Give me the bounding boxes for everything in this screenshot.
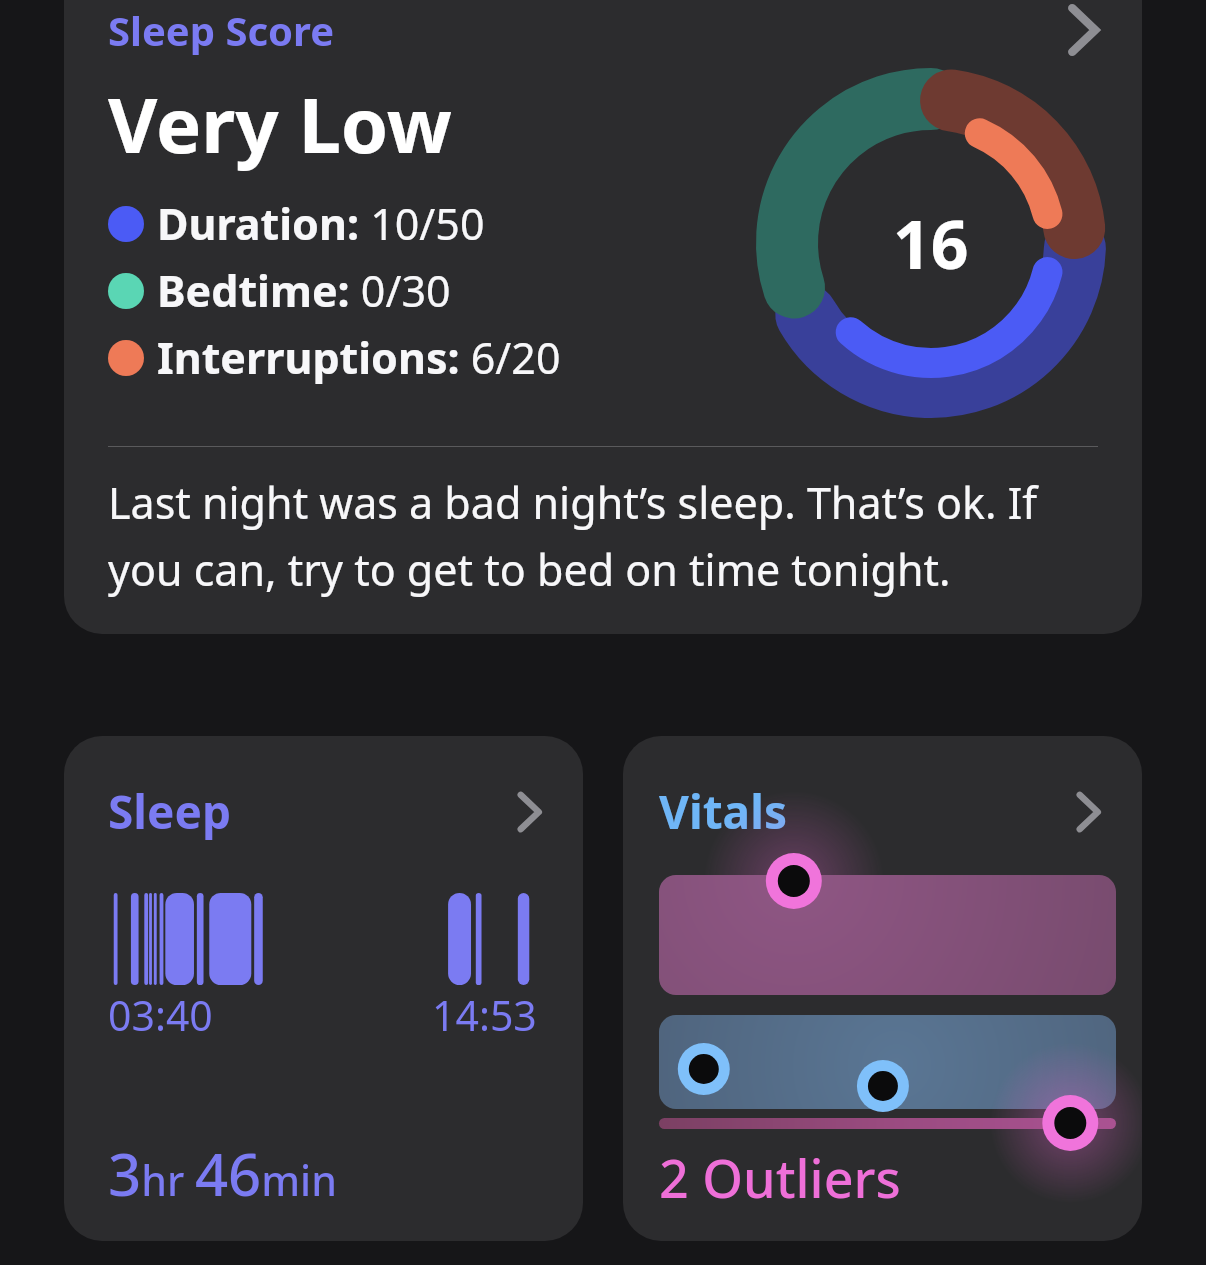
staticText: Bedtime: 0/30 xyxy=(157,261,451,320)
staticText: Sleep xyxy=(108,780,232,843)
button[interactable]: Vitals xyxy=(623,736,1142,1241)
button[interactable]: Open Vitals xyxy=(1062,785,1116,839)
staticText: Very Low xyxy=(108,72,452,176)
staticText: 3hr 46min xyxy=(108,1134,337,1213)
staticText: 03:40 xyxy=(108,987,213,1043)
button[interactable]: Open Sleep xyxy=(503,785,557,839)
staticText: Sleep Score xyxy=(108,3,335,57)
staticText: 2 Outliers xyxy=(659,1142,901,1213)
staticText: Last night was a bad night’s sleep. That… xyxy=(108,473,1044,598)
button[interactable]: Sleep Score xyxy=(64,0,1142,634)
button[interactable]: Sleep xyxy=(64,736,583,1241)
staticText: Interruptions: 6/20 xyxy=(157,328,561,387)
button[interactable]: Open Sleep Score xyxy=(1054,0,1114,60)
staticText: Duration: 10/50 xyxy=(157,194,485,253)
staticText: 16 xyxy=(893,198,969,288)
staticText: 14:53 xyxy=(432,987,537,1043)
staticText: Vitals xyxy=(659,780,787,843)
